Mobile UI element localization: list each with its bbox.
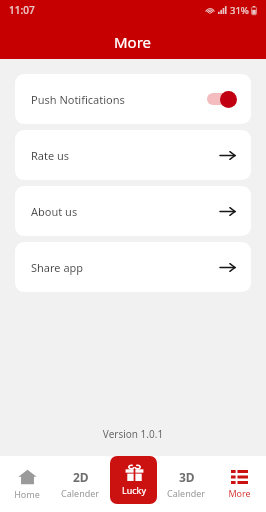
staticText: Rate us (31, 148, 70, 163)
button[interactable]: Home (0, 465, 54, 504)
staticText: About us (31, 204, 78, 219)
staticText: Calender (61, 487, 100, 499)
staticText: 3D (179, 469, 195, 485)
staticText: Version 1.0.1 (0, 427, 266, 441)
button[interactable]: Push notifications toggle (206, 90, 237, 108)
staticText: 11:07 (9, 3, 35, 17)
staticText: Share app (31, 260, 84, 275)
button[interactable]: Share app (15, 242, 251, 292)
staticText: 2D (73, 469, 89, 485)
button[interactable]: Push Notifications (15, 74, 251, 124)
button[interactable]: More (213, 466, 266, 503)
staticText: Push Notifications (31, 92, 125, 107)
button[interactable]: About us (15, 186, 251, 236)
staticText: Calender (167, 487, 206, 499)
staticText: More (228, 487, 251, 499)
button[interactable]: Lucky (110, 456, 157, 504)
staticText: More (114, 32, 152, 52)
button[interactable]: 3D (160, 465, 213, 503)
staticText: Lucky (122, 484, 146, 496)
button[interactable]: 2D (54, 465, 107, 503)
button[interactable]: Rate us (15, 130, 251, 180)
staticText: Home (14, 488, 40, 500)
staticText: 31% (230, 4, 249, 17)
